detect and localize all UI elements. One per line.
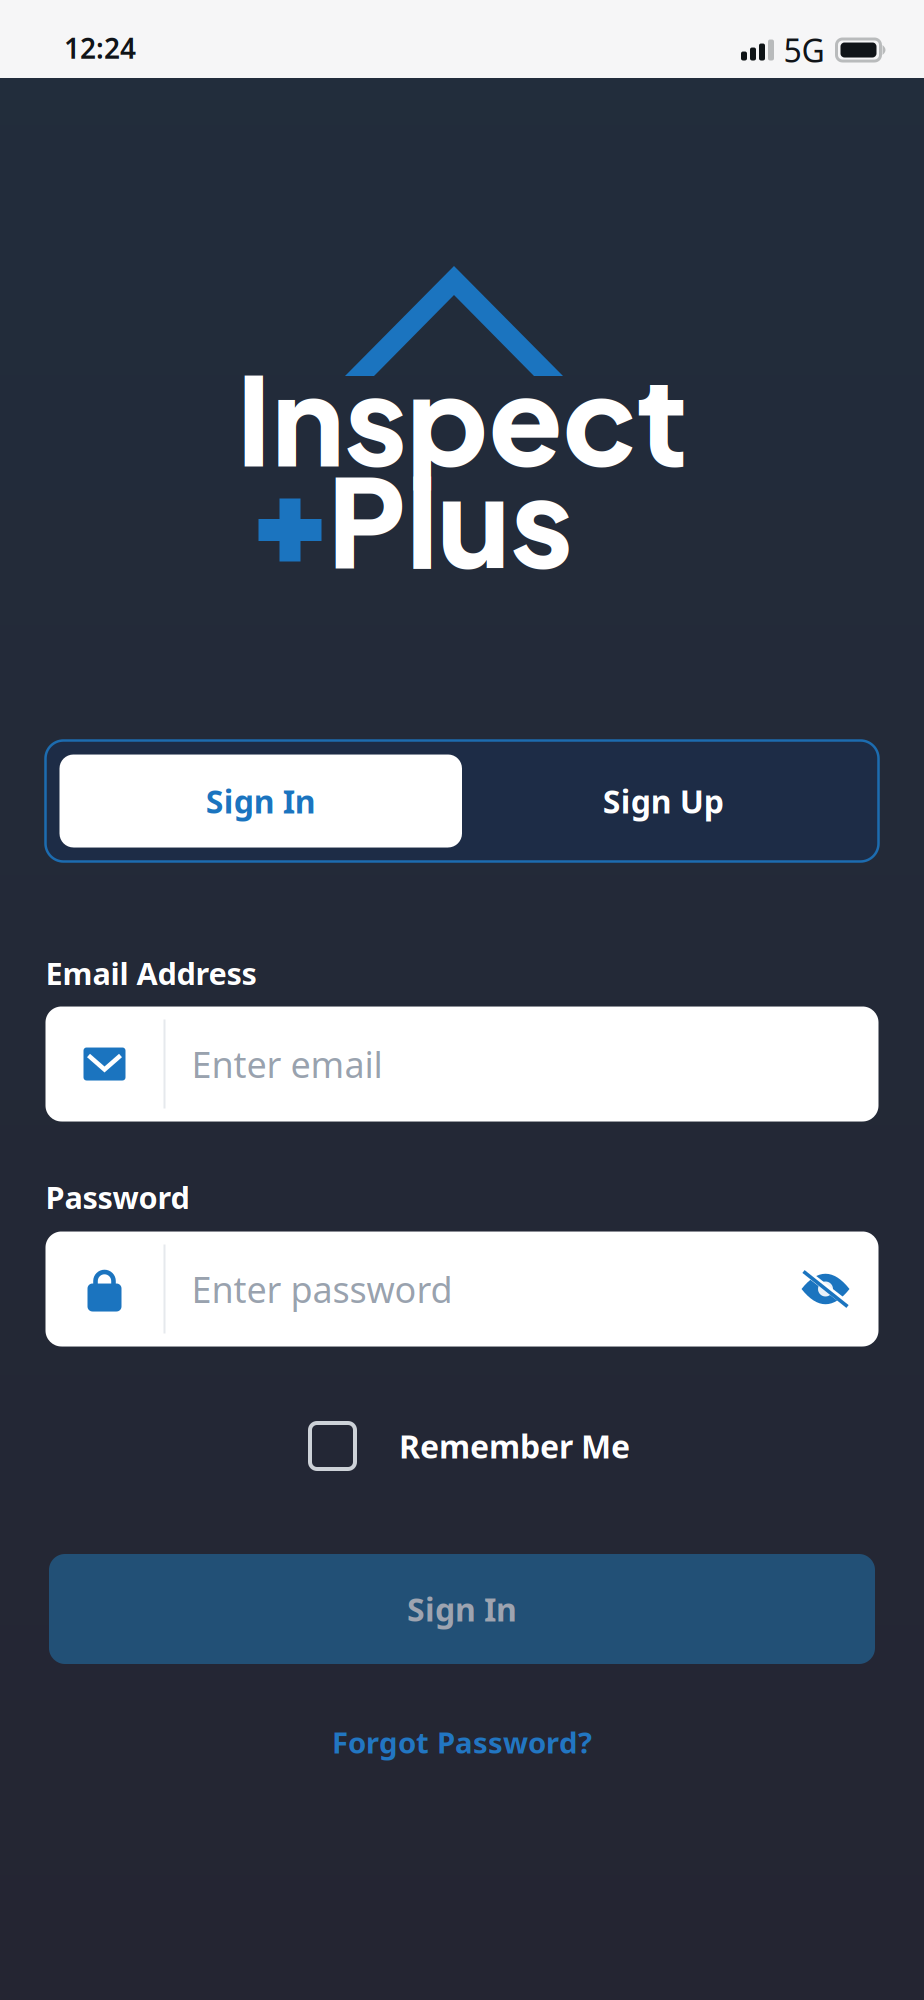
staticText: Forgot Password? <box>332 1722 592 1761</box>
button[interactable]: Sign In <box>49 1554 875 1664</box>
staticText: Sign In <box>407 1588 517 1630</box>
staticText: Enter password <box>191 1265 452 1313</box>
staticText: Plus <box>327 443 572 595</box>
staticText: Password <box>45 1177 189 1217</box>
staticText: Inspect <box>236 341 687 493</box>
staticText: 5G <box>783 29 824 71</box>
staticText: Remember Me <box>399 1425 630 1467</box>
button[interactable]: Forgot Password? <box>332 1722 592 1761</box>
staticText: Sign In <box>206 780 316 822</box>
staticText: 12:24 <box>64 29 136 67</box>
staticText: Enter email <box>191 1040 382 1088</box>
button[interactable]: Sign Up <box>462 754 864 847</box>
button[interactable]: Sign In <box>59 754 462 847</box>
staticText: Sign Up <box>603 780 724 822</box>
button[interactable]: Show password <box>801 1270 849 1307</box>
button[interactable]: Remember Me <box>310 1423 630 1469</box>
staticText: Email Address <box>45 953 256 993</box>
